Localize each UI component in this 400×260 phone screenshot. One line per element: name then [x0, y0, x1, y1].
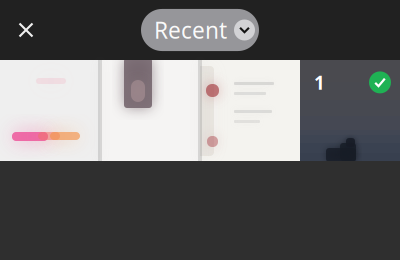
- button[interactable]: Photo 1: [0, 60, 100, 161]
- staticText: Recent: [154, 15, 227, 45]
- button[interactable]: Recent: [141, 9, 259, 51]
- staticText: 1: [314, 70, 325, 95]
- button[interactable]: Photo 3: [200, 60, 300, 161]
- button[interactable]: Photo 4, selected: [300, 60, 400, 161]
- button[interactable]: Photo 2: [100, 60, 200, 161]
- button[interactable]: Close: [3, 7, 49, 53]
